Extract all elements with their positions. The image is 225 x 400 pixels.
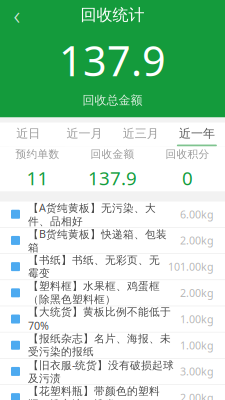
- staticText: 近日: [16, 126, 40, 141]
- button[interactable]: 【A货纯黄板】无污染、大件、品相好: [0, 201, 225, 228]
- staticText: 0: [182, 166, 193, 190]
- staticText: 2.00kg: [180, 233, 214, 248]
- button[interactable]: 近日: [0, 122, 56, 146]
- staticText: ‹: [13, 0, 20, 32]
- staticText: 137.9: [88, 166, 137, 190]
- button[interactable]: 【旧衣服-统货】没有破损起球及污渍: [0, 359, 225, 385]
- staticText: 【旧衣服-统货】没有破损起球及污渍: [28, 358, 174, 385]
- staticText: 【塑料框】水果框、鸡蛋框（除黑色塑料框）: [28, 280, 160, 306]
- button[interactable]: 【书纸】书纸、无彩页、无霉变: [0, 254, 225, 280]
- staticText: 3.00kg: [180, 364, 214, 379]
- staticText: 【书纸】书纸、无彩页、无霉变: [28, 254, 160, 280]
- staticText: 6.00kg: [180, 207, 214, 221]
- staticText: 回收统计: [80, 5, 144, 25]
- staticText: 近一年: [179, 126, 215, 141]
- button[interactable]: 【报纸杂志】名片、海报、未受污染的报纸: [0, 332, 225, 359]
- button[interactable]: 【花塑料瓶】带颜色的塑料瓶、洗衣液、洗发: [0, 385, 225, 400]
- staticText: 回收总金额: [82, 93, 142, 107]
- staticText: 【报纸杂志】名片、海报、未受污染的报纸: [28, 332, 171, 358]
- staticText: 【花塑料瓶】带颜色的塑料瓶、洗衣液、洗发: [28, 385, 160, 400]
- staticText: 【B货纯黄板】快递箱、包装箱: [28, 227, 167, 254]
- staticText: 1.00kg: [180, 312, 214, 326]
- staticText: 137.9: [59, 33, 166, 88]
- staticText: 回收金额: [90, 148, 134, 161]
- button[interactable]: 【大统货】黄板比例不能低于70%: [0, 306, 225, 332]
- staticText: 近一月: [66, 126, 102, 141]
- staticText: 11: [26, 166, 48, 190]
- staticText: 1.00kg: [180, 338, 214, 352]
- staticText: 预约单数: [15, 148, 59, 161]
- button[interactable]: Back: [0, 3, 34, 27]
- staticText: 2.00kg: [180, 391, 214, 400]
- staticText: 【A货纯黄板】无污染、大件、品相好: [28, 201, 156, 228]
- button[interactable]: 近三月: [112, 122, 169, 146]
- staticText: 【大统货】黄板比例不能低于70%: [28, 305, 171, 333]
- staticText: 近三月: [123, 126, 159, 141]
- button[interactable]: 近一年: [169, 122, 225, 146]
- staticText: 回收积分: [165, 148, 209, 161]
- button[interactable]: 【B货纯黄板】快递箱、包装箱: [0, 228, 225, 254]
- button[interactable]: 【塑料框】水果框、鸡蛋框（除黑色塑料框）: [0, 280, 225, 306]
- staticText: 2.00kg: [180, 286, 214, 300]
- button[interactable]: 近一月: [56, 122, 112, 146]
- staticText: 101.00kg: [168, 260, 214, 274]
